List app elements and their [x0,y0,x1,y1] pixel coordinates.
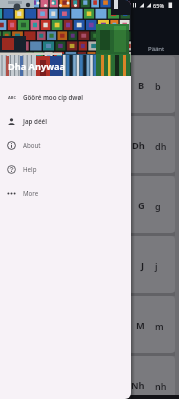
button[interactable]: Help [0,157,130,181]
staticText: nh [155,380,167,392]
button[interactable]: More [0,181,130,205]
staticText: Nh [131,379,145,392]
staticText: ABC [8,95,16,100]
staticText: J [141,259,145,272]
staticText: G [138,199,145,212]
staticText: Gööré moo cíp dwøl [23,93,83,101]
button[interactable]: Jap déél [0,109,130,133]
staticText: More [23,189,39,197]
button[interactable]: Päänt [148,45,165,53]
staticText: j [155,260,158,272]
staticText: g [155,200,161,212]
staticText: Dha Anywaa [8,60,66,73]
button[interactable]: Nh [0,356,175,399]
button[interactable]: M [0,296,175,353]
staticText: B [138,79,145,92]
staticText: 65% [153,2,165,10]
staticText: m [155,320,164,332]
button[interactable]: About [0,133,130,157]
staticText: dh [155,140,167,152]
button[interactable]: G [0,176,175,233]
staticText: About [23,141,41,149]
staticText: b [155,80,161,92]
staticText: Dh [132,139,145,152]
staticText: M [136,319,145,332]
button[interactable]: B [0,56,175,113]
staticText: Jap déél [23,117,47,125]
button[interactable]: J [0,236,175,293]
button[interactable]: Dh [0,116,175,173]
staticText: Help [23,165,37,173]
button[interactable]: ABC [0,85,130,109]
